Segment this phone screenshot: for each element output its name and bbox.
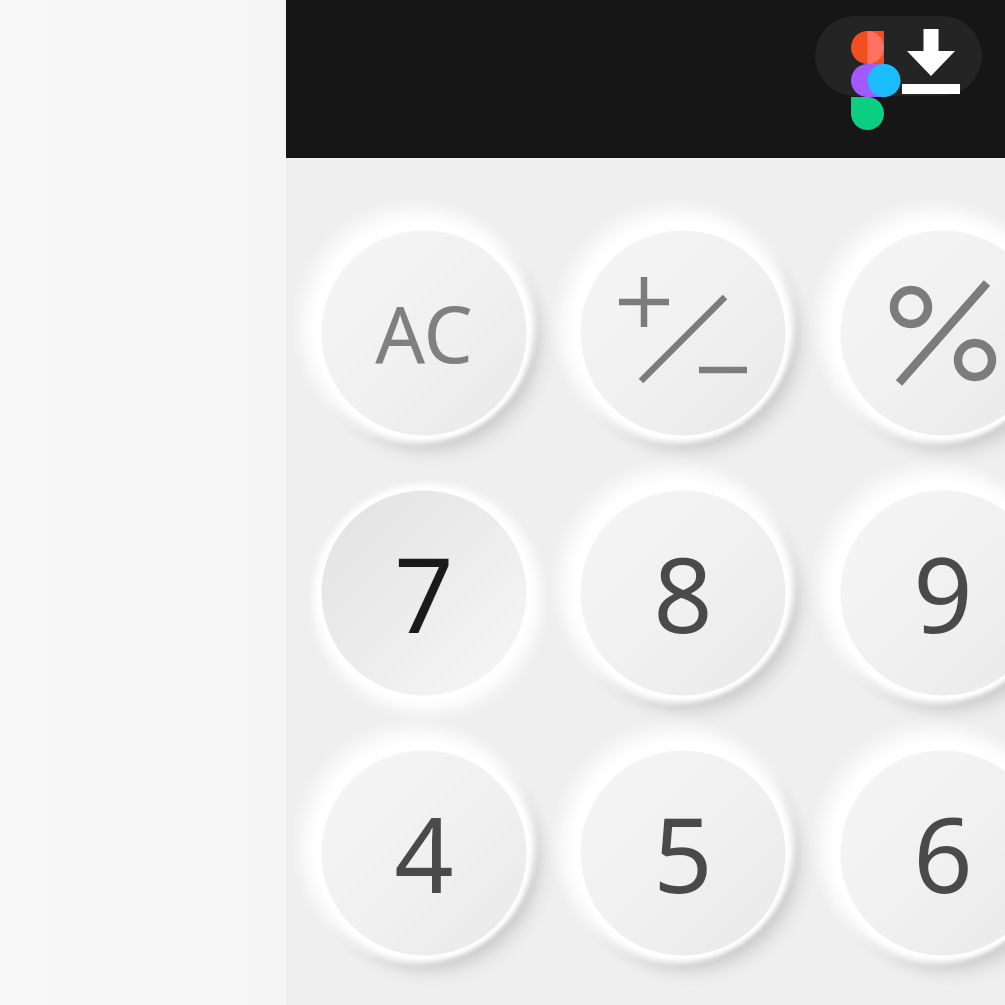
button[interactable]: 7 [321, 490, 526, 695]
button[interactable]: All clear [321, 230, 526, 435]
button[interactable]: 9 [840, 490, 1005, 695]
button[interactable]: 8 [580, 490, 785, 695]
staticText: 9 [913, 522, 973, 664]
button[interactable]: Toggle sign [580, 230, 785, 435]
button[interactable]: Open in Figma / Download [815, 16, 982, 96]
button[interactable]: 6 [840, 750, 1005, 955]
staticText: 5 [653, 782, 713, 924]
button[interactable]: Percent [840, 230, 1005, 435]
button[interactable]: 5 [580, 750, 785, 955]
staticText: AC [375, 280, 473, 386]
staticText: 6 [913, 782, 973, 924]
button[interactable]: 4 [321, 750, 526, 955]
staticText: 4 [394, 782, 454, 924]
staticText: 7 [394, 522, 454, 664]
staticText: 8 [653, 522, 713, 664]
